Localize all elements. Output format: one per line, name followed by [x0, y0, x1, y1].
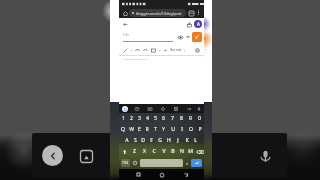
button[interactable]: Period: [185, 161, 189, 165]
button[interactable]: blogger.com/u/1/blog/post: [129, 9, 186, 17]
button[interactable]: K: [182, 135, 191, 146]
button[interactable]: Recent apps: [134, 170, 143, 179]
staticText: 2: [130, 115, 133, 122]
button[interactable]: Z: [129, 146, 139, 157]
button[interactable]: Enter: [191, 159, 202, 167]
button[interactable]: E: [135, 124, 143, 135]
button[interactable]: 1: [119, 113, 127, 124]
button[interactable]: 8: [177, 113, 186, 124]
button[interactable]: Home: [121, 9, 129, 17]
button[interactable]: Q: [119, 124, 127, 135]
staticText: M: [188, 148, 193, 155]
button[interactable]: Tabs: [187, 9, 195, 17]
button[interactable]: H: [164, 135, 173, 146]
staticText: N: [180, 148, 184, 155]
button[interactable]: Format tool: [194, 47, 201, 54]
button[interactable]: Account: [194, 20, 202, 28]
button[interactable]: J: [173, 135, 182, 146]
staticText: L: [194, 137, 197, 144]
staticText: V: [162, 148, 166, 155]
staticText: Z: [133, 148, 136, 155]
button[interactable]: 9: [186, 113, 195, 124]
staticText: ⬆: [122, 149, 127, 155]
button[interactable]: Normal: [170, 48, 182, 52]
staticText: O: [189, 126, 193, 133]
button[interactable]: Emoji: [132, 160, 138, 166]
button[interactable]: C: [149, 146, 159, 157]
button[interactable]: F: [147, 135, 155, 146]
button[interactable]: A: [123, 135, 131, 146]
staticText: I: [181, 126, 183, 133]
button[interactable]: M: [186, 146, 195, 157]
button[interactable]: Voice input: [195, 105, 203, 113]
button[interactable]: Format tool: [142, 47, 149, 54]
button[interactable]: L: [191, 135, 200, 146]
button[interactable]: Home: [157, 170, 166, 179]
staticText: P: [198, 126, 202, 133]
button[interactable]: 0: [195, 113, 204, 124]
button[interactable]: ⬆: [119, 146, 129, 157]
button[interactable]: R: [143, 124, 151, 135]
button[interactable]: Google: [122, 106, 128, 112]
button[interactable]: T: [151, 124, 159, 135]
button[interactable]: Back: [42, 145, 63, 166]
button[interactable]: Y: [159, 124, 168, 135]
staticText: K: [185, 137, 189, 144]
staticText: Normal: [170, 48, 182, 52]
button[interactable]: S: [131, 135, 139, 146]
button[interactable]: ?123: [121, 159, 130, 167]
staticText: J: [177, 137, 179, 144]
button[interactable]: 3: [135, 113, 143, 124]
button[interactable]: I: [177, 124, 186, 135]
button[interactable]: W: [127, 124, 135, 135]
staticText: 0: [198, 115, 201, 122]
button[interactable]: Keyboard tool: [182, 105, 195, 112]
button[interactable]: 6: [159, 113, 168, 124]
button[interactable]: Format tool: [150, 47, 157, 54]
button[interactable]: N: [177, 146, 186, 157]
staticText: 9: [189, 115, 192, 122]
button[interactable]: Keyboard tool: [156, 105, 169, 112]
button[interactable]: Preview: [177, 34, 184, 41]
button[interactable]: Keyboard tool: [143, 105, 156, 112]
button[interactable]: X: [139, 146, 149, 157]
button[interactable]: Format tool: [134, 47, 141, 54]
staticText: ?123: [122, 161, 129, 165]
button[interactable]: Back: [181, 170, 190, 179]
button[interactable]: V: [159, 146, 168, 157]
button[interactable]: Format tool: [122, 47, 129, 54]
staticText: W: [129, 126, 134, 133]
staticText: A: [197, 21, 200, 27]
button[interactable]: Publish: [192, 32, 202, 42]
button[interactable]: 2: [127, 113, 135, 124]
button[interactable]: Keyboard tool: [131, 105, 143, 112]
button[interactable]: O: [186, 124, 195, 135]
button[interactable]: 4: [143, 113, 151, 124]
button[interactable]: ⌫: [195, 146, 204, 157]
button[interactable]: Voice search: [255, 146, 275, 166]
staticText: B: [171, 148, 175, 155]
button[interactable]: 5: [151, 113, 159, 124]
button[interactable]: Back: [121, 20, 129, 28]
button[interactable]: Format tool: [162, 47, 169, 54]
staticText: 4: [146, 115, 149, 122]
staticText: 3: [138, 115, 141, 122]
staticText: ⌫: [196, 149, 204, 155]
button[interactable]: 7: [168, 113, 177, 124]
staticText: X: [143, 148, 146, 155]
button[interactable]: Space: [140, 159, 183, 167]
button[interactable]: Share: [185, 20, 193, 28]
button[interactable]: D: [139, 135, 147, 146]
button[interactable]: More options: [195, 9, 202, 16]
button[interactable]: Screenshot: [77, 147, 95, 165]
button[interactable]: G: [155, 135, 164, 146]
staticText: Q: [121, 126, 125, 133]
button[interactable]: P: [195, 124, 204, 135]
button[interactable]: U: [168, 124, 177, 135]
staticText: 5: [154, 115, 157, 122]
staticText: A: [125, 137, 129, 144]
button[interactable]: Keyboard tool: [169, 105, 182, 112]
button[interactable]: B: [168, 146, 177, 157]
staticText: U: [171, 126, 175, 133]
staticText: C: [152, 148, 156, 155]
